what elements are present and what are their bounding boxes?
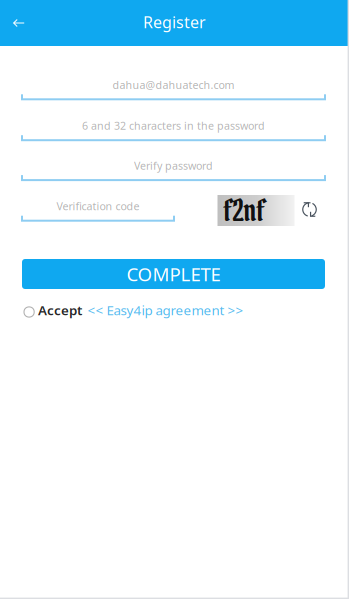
button[interactable]: Verification code image — [217, 195, 294, 226]
button[interactable]: COMPLETE — [22, 259, 325, 289]
staticText: << Easy4ip agreement >> — [87, 301, 243, 319]
button[interactable]: 6 and 32 characters in the password — [21, 116, 326, 141]
button[interactable]: Verification code — [21, 197, 175, 222]
staticText: Verification code — [56, 199, 139, 213]
button[interactable]: dahua@dahuatech.com — [21, 75, 326, 100]
staticText: dahua@dahuatech.com — [112, 78, 234, 92]
staticText: Register — [143, 11, 206, 33]
button[interactable]: Verify password — [21, 156, 326, 181]
button[interactable]: Back — [0, 0, 42, 46]
staticText: 6 and 32 characters in the password — [82, 119, 265, 133]
button[interactable]: Refresh verification code — [295, 195, 323, 223]
staticText: Verify password — [134, 158, 213, 173]
staticText: f2nf — [223, 192, 265, 229]
staticText: COMPLETE — [126, 262, 220, 286]
staticText: Accept — [38, 301, 82, 319]
button[interactable]: Accept — [23, 299, 249, 321]
